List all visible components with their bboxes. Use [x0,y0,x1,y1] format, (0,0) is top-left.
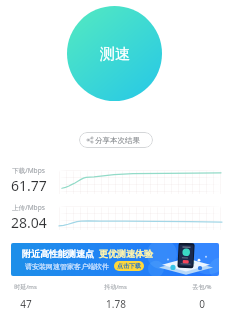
staticText: 0 [199,297,205,311]
staticText: 时延/ms [14,283,37,291]
staticText: 抖动/ms [104,283,127,291]
button[interactable]: 抖动/ms [85,283,145,317]
staticText: 61.77 [11,176,47,195]
staticText: 丢包/% [192,283,212,291]
staticText: 附近高性能测速点 [22,248,94,259]
button[interactable]: 时延/ms [0,283,55,317]
button[interactable]: 点击下载 [114,261,144,271]
staticText: 分享本次结果 [95,136,140,145]
staticText: 点击下载 [117,262,141,270]
staticText: 测速 [100,45,130,64]
button[interactable]: 测速 [67,6,162,101]
staticText: 28.04 [11,213,47,232]
staticText: 请安装网速管家客户端软件 [25,262,109,271]
staticText: 更优测速体验 [99,248,153,259]
button[interactable]: 附近高性能测速点 [11,243,219,276]
staticText: 上传/Mbps [12,203,45,212]
button[interactable]: 分享本次结果 [79,132,153,148]
staticText: 下载/Mbps [12,166,45,175]
staticText: 47 [20,297,32,311]
button[interactable]: 丢包/% [172,283,231,317]
staticText: 1.78 [106,297,126,311]
